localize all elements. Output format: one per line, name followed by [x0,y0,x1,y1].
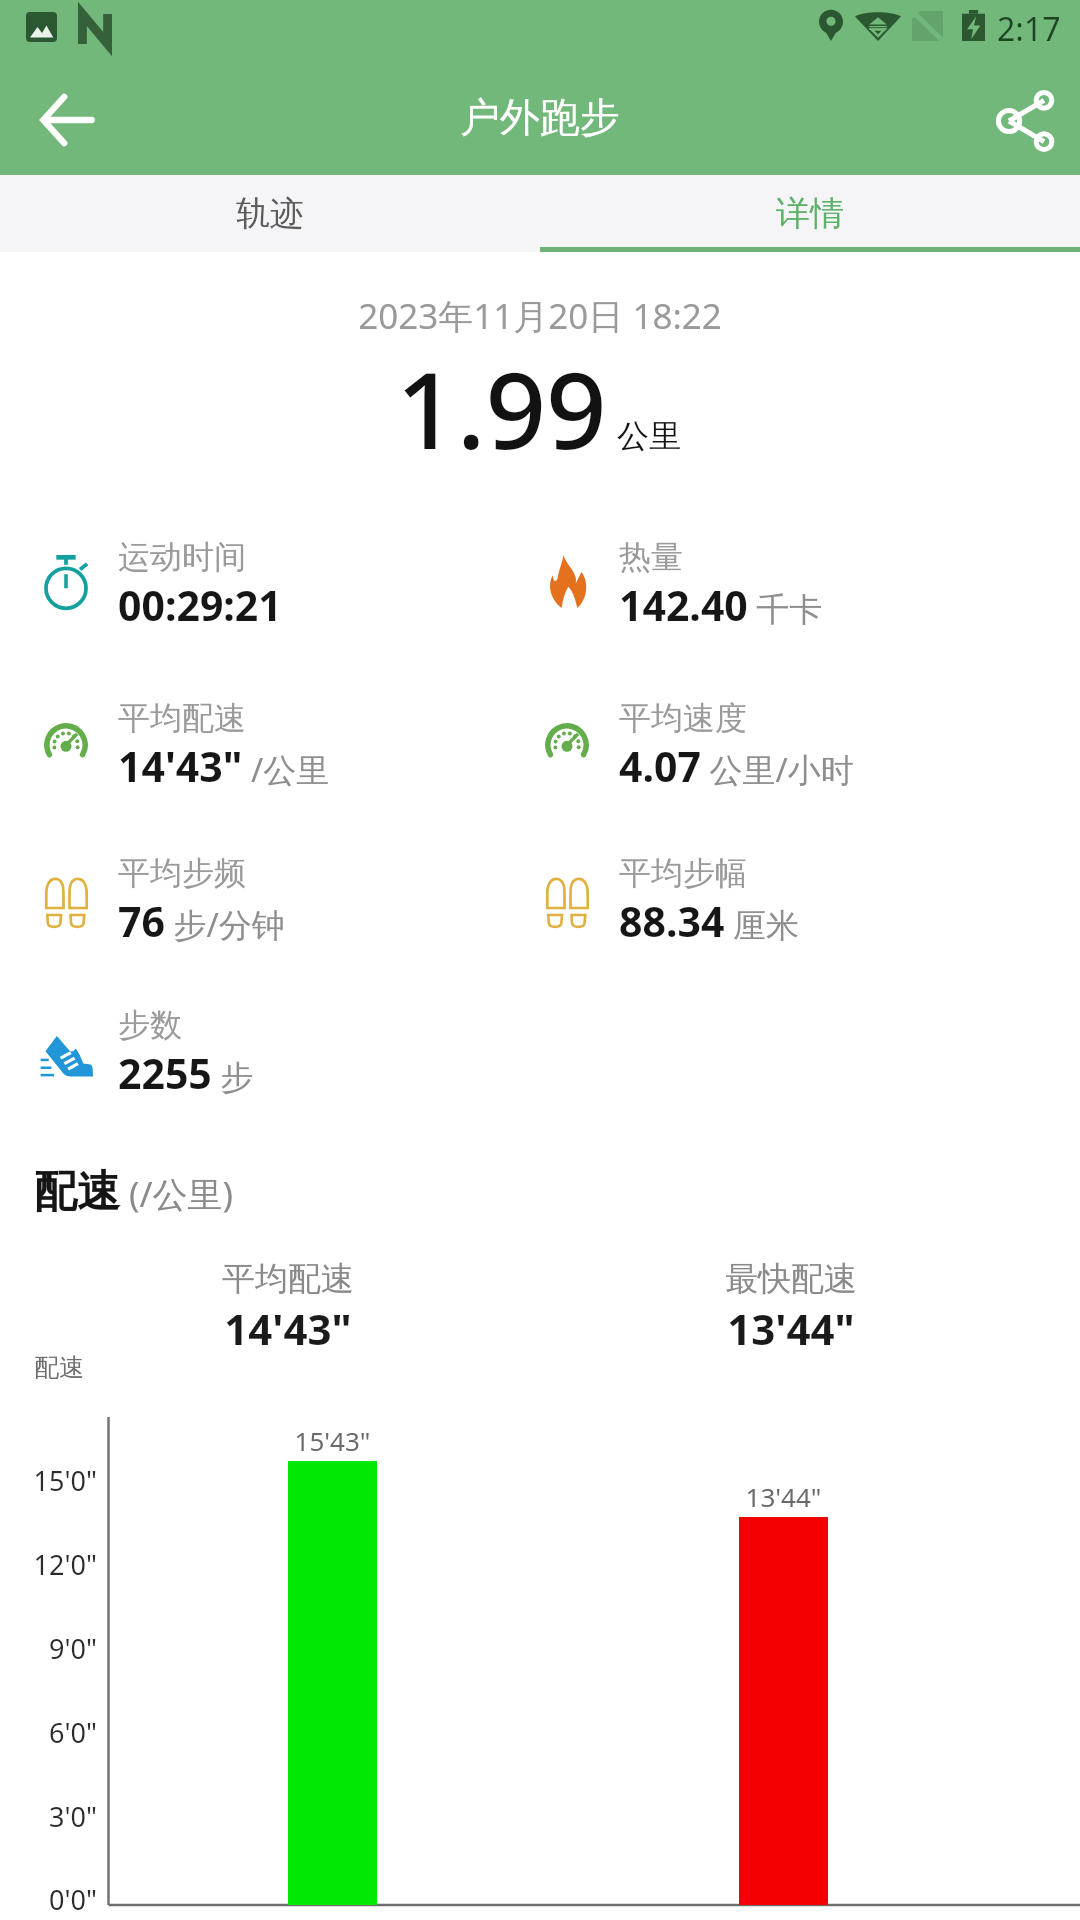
staticText: 3'0" [0,1798,97,1835]
staticText: 0'0" [0,1881,97,1918]
staticText: 13'44" [641,1300,941,1357]
staticText: 平均步幅 [619,853,747,893]
staticText: 运动时间 [118,537,246,577]
staticText: 4.07 公里/小时 [619,738,854,794]
staticText: 15'0" [0,1462,97,1499]
staticText: 2255 步 [118,1045,254,1101]
staticText: 9'0" [0,1630,97,1667]
staticText: 步数 [118,1005,182,1045]
staticText: 户外跑步 [460,92,620,142]
staticText: 2:17 [997,7,1061,51]
staticText: 最快配速 [641,1258,941,1300]
staticText: 14'43" /公里 [118,738,330,794]
staticText: 12'0" [0,1546,97,1583]
button[interactable]: Back [21,74,113,166]
button[interactable]: Share [980,75,1072,167]
staticText: 平均速度 [619,698,747,738]
button[interactable]: 详情 [540,175,1080,252]
staticText: 配速 [34,1165,120,1219]
staticText: 平均配速 [138,1258,438,1300]
staticText: 15'43" [288,1423,377,1458]
staticText: 13'44" [739,1479,828,1514]
staticText: 配速 [34,1352,84,1383]
staticText: 14'43" [138,1300,438,1357]
staticText: 平均配速 [118,698,246,738]
staticText: 88.34 厘米 [619,893,799,949]
staticText: (/公里) [129,1170,234,1218]
staticText: 142.40 千卡 [619,577,823,633]
staticText: 76 步/分钟 [118,893,285,949]
staticText: 详情 [776,192,844,235]
button[interactable]: 轨迹 [0,175,540,252]
staticText: 轨迹 [236,192,304,235]
staticText: 热量 [619,537,683,577]
staticText: 1.99 [396,336,607,480]
staticText: 00:29:21 [118,577,282,633]
staticText: 平均步频 [118,853,246,893]
staticText: 公里 [617,416,681,456]
staticText: 6'0" [0,1714,97,1751]
staticText: 2023年11月20日 18:22 [0,292,1080,340]
